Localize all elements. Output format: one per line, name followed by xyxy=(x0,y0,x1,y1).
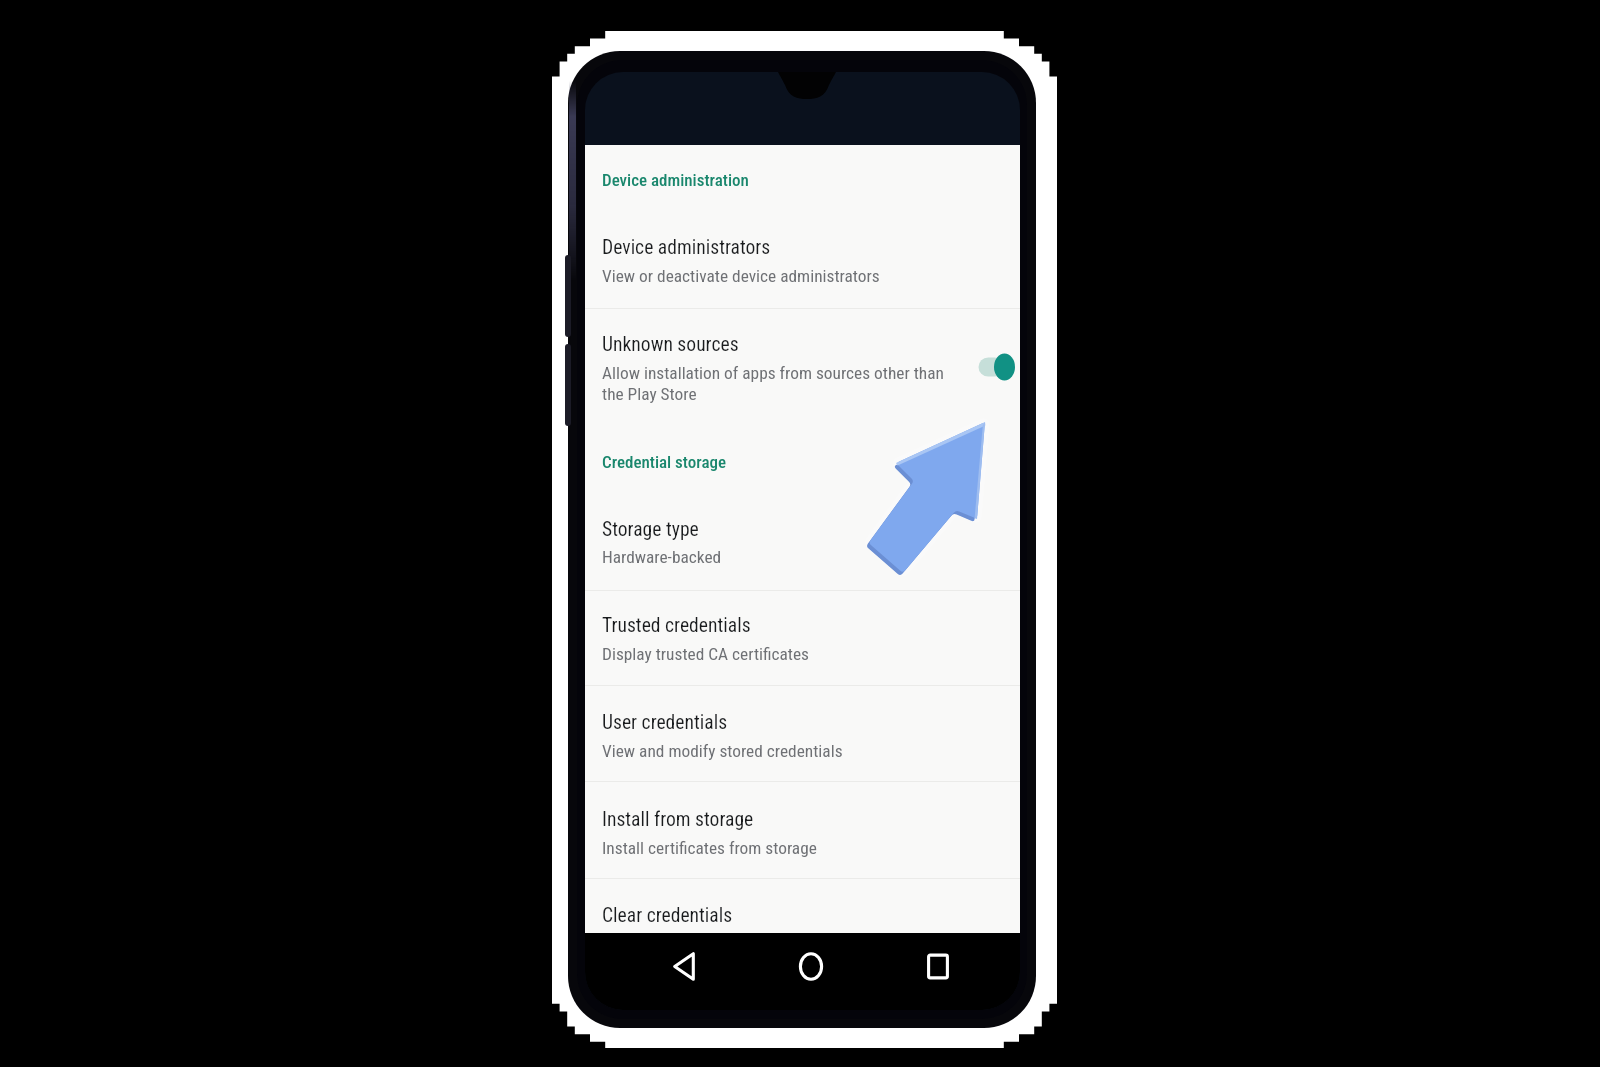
staticText: Device administration xyxy=(602,170,749,190)
staticText: the Play Store xyxy=(602,384,697,404)
button[interactable]: Back xyxy=(656,928,712,1005)
button[interactable]: Clear credentials xyxy=(585,879,1020,937)
button[interactable]: Storage type xyxy=(585,492,1020,590)
staticText: Credential storage xyxy=(602,452,727,472)
button[interactable]: Recent apps xyxy=(910,928,966,1005)
staticText: Allow installation of apps from sources … xyxy=(602,363,944,383)
staticText: Install from storage xyxy=(602,808,754,831)
staticText: User credentials xyxy=(602,711,728,734)
staticText: Storage type xyxy=(602,518,699,541)
button[interactable]: Trusted credentials xyxy=(585,591,1020,685)
button[interactable]: Home xyxy=(783,928,839,1005)
button[interactable]: Install from storage xyxy=(585,782,1020,878)
button[interactable]: User credentials xyxy=(585,686,1020,781)
staticText: Device administrators xyxy=(602,236,771,259)
button[interactable]: Unknown sources toggle, on xyxy=(974,348,1020,386)
staticText: View or deactivate device administrators xyxy=(602,266,880,286)
staticText: Unknown sources xyxy=(602,333,739,356)
button[interactable]: Unknown sources xyxy=(585,309,1020,421)
staticText: Install certificates from storage xyxy=(602,838,817,858)
staticText: Clear credentials xyxy=(602,904,733,927)
staticText: Trusted credentials xyxy=(602,614,751,637)
staticText: View and modify stored credentials xyxy=(602,741,843,761)
button[interactable]: Device administrators xyxy=(585,210,1020,308)
staticText: Hardware-backed xyxy=(602,547,722,567)
staticText: Display trusted CA certificates xyxy=(602,644,810,664)
